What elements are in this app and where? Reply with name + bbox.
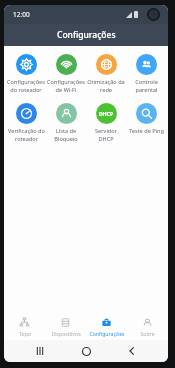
staticText: 12:00 [13, 10, 30, 19]
staticText: Controle parental [135, 78, 158, 93]
staticText: Topo [19, 330, 31, 337]
staticText: Sobre [140, 330, 155, 337]
button[interactable]: DHCP [86, 101, 126, 144]
staticText: Otimização da rede [87, 78, 125, 93]
button[interactable]: Recent apps [30, 341, 50, 361]
button[interactable]: Configurações [86, 317, 127, 337]
staticText: Configurações de Wi-Fi [47, 78, 85, 93]
staticText: Verificação do roteador [8, 127, 45, 142]
staticText: DHCP [99, 110, 114, 117]
button[interactable]: Lista de Bloqueio [46, 101, 86, 144]
staticText: Lista de Bloqueio [54, 127, 78, 142]
button[interactable]: Dispositivos [45, 317, 86, 337]
staticText: Configurações do roteador [7, 78, 45, 93]
button[interactable]: Verificação do roteador [6, 101, 46, 144]
staticText: Servidor DHCP [87, 127, 125, 142]
button[interactable]: Configurações de Wi-Fi [46, 52, 86, 95]
staticText: Configurações [57, 29, 116, 41]
button[interactable]: Back [122, 341, 142, 361]
button[interactable]: Otimização da rede [86, 52, 126, 95]
button[interactable]: Controle parental [126, 52, 166, 95]
button[interactable]: Topo [4, 317, 45, 337]
button[interactable]: Configurações do roteador [6, 52, 46, 95]
staticText: Configurações [89, 330, 125, 337]
staticText: Teste de Ping [129, 127, 164, 135]
button[interactable]: Home [76, 341, 96, 361]
staticText: Dispositivos [51, 330, 81, 337]
button[interactable]: Sobre [127, 317, 168, 337]
button[interactable]: Teste de Ping [126, 101, 166, 137]
